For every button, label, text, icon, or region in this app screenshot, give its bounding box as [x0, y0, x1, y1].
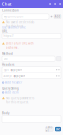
staticText: Connection	[2, 9, 19, 12]
button[interactable]: Use another one	[2, 26, 61, 29]
staticText: https://	[3, 34, 13, 38]
staticText: No query parameters	[6, 96, 34, 100]
staticText: Accept	[3, 74, 12, 78]
staticText: Body	[2, 111, 9, 115]
staticText: Add item	[5, 91, 18, 94]
staticText: for this request.	[6, 100, 29, 104]
button[interactable]: Add item	[2, 91, 61, 94]
staticText: app/json	[10, 68, 22, 71]
staticText: URL	[2, 30, 7, 33]
button[interactable]: Connection status	[50, 14, 53, 19]
staticText: app/json	[13, 74, 25, 78]
staticText: My connection	[3, 15, 23, 18]
button[interactable]: Accept	[2, 73, 61, 79]
staticText: GET	[3, 57, 7, 60]
staticText: No saved credentials	[6, 20, 34, 24]
staticText: a scheme.	[6, 46, 19, 49]
button[interactable]: Cancel	[45, 127, 53, 131]
staticText: Method	[2, 52, 13, 55]
staticText: Chat	[2, 1, 12, 7]
staticText: Save	[55, 127, 60, 131]
staticText: Enter a full URL with	[6, 42, 34, 45]
button[interactable]: Search	[49, 2, 51, 6]
staticText: Headers	[2, 63, 14, 66]
staticText: Add header	[5, 81, 22, 84]
staticText: Cancel	[46, 126, 53, 133]
button[interactable]: Add header	[2, 81, 61, 84]
button[interactable]: More	[59, 2, 61, 6]
staticText: Add	[54, 15, 60, 18]
staticText: for this host.	[6, 24, 24, 28]
staticText: Query String	[2, 87, 19, 90]
button[interactable]: Info	[54, 2, 56, 6]
staticText: Use another one	[2, 26, 26, 29]
button[interactable]: Save	[55, 127, 61, 131]
button[interactable]: Add	[54, 14, 61, 19]
button[interactable]: Type	[2, 67, 61, 73]
staticText: Type	[3, 68, 9, 71]
